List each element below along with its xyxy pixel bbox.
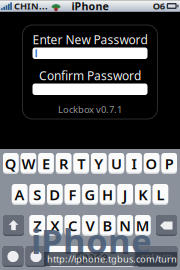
staticText: Confirm Password: [39, 67, 141, 83]
button[interactable]: return: [136, 246, 177, 267]
staticText: K: [138, 185, 147, 204]
staticText: O: [146, 154, 158, 173]
staticText: Lockbox v0.7.1: [58, 103, 122, 116]
button[interactable]: U: [109, 153, 124, 174]
staticText: Enter New Password: [32, 31, 147, 47]
button[interactable]: [32, 47, 147, 59]
staticText: I: [131, 154, 136, 173]
staticText: iPhone: [31, 217, 152, 263]
button[interactable]: K: [135, 184, 151, 205]
staticText: Q: [5, 154, 17, 173]
staticText: E: [42, 154, 50, 173]
staticText: T: [77, 154, 85, 173]
button[interactable]: V: [82, 215, 98, 236]
staticText: http://iphone.tgbus.com/turn: [47, 253, 177, 265]
staticText: W: [21, 154, 35, 173]
staticText: C: [68, 216, 77, 235]
button[interactable]: Y: [91, 153, 107, 174]
button[interactable]: T: [73, 153, 89, 174]
staticText: iPhone: [71, 0, 108, 13]
staticText: return: [141, 249, 173, 264]
staticText: B: [103, 216, 113, 235]
staticText: R: [59, 154, 68, 173]
button[interactable]: Next keyboard: [25, 246, 46, 267]
button[interactable]: H: [100, 184, 115, 205]
staticText: L: [156, 185, 164, 204]
button[interactable]: E: [38, 153, 54, 174]
button[interactable]: space: [48, 246, 134, 267]
staticText: M: [136, 216, 150, 235]
staticText: CHIN...: [14, 0, 48, 12]
staticText: P: [165, 154, 174, 173]
button[interactable]: Delete: [156, 215, 177, 236]
button[interactable]: [32, 83, 147, 95]
button[interactable]: S: [29, 184, 45, 205]
staticText: G: [84, 185, 95, 204]
button[interactable]: W: [21, 153, 36, 174]
staticText: H: [102, 185, 113, 204]
staticText: U: [111, 154, 122, 173]
button[interactable]: G: [82, 184, 98, 205]
staticText: V: [85, 216, 94, 235]
staticText: F: [68, 185, 76, 204]
button[interactable]: J: [117, 184, 133, 205]
button[interactable]: A: [12, 184, 27, 205]
button[interactable]: Shift: [3, 215, 24, 236]
button[interactable]: Numbers and symbols: [2, 246, 23, 267]
button[interactable]: F: [65, 184, 80, 205]
staticText: space: [75, 248, 108, 264]
staticText: X: [50, 216, 59, 235]
button[interactable]: L: [153, 184, 168, 205]
staticText: Y: [94, 154, 103, 173]
button[interactable]: Q: [3, 153, 19, 174]
button[interactable]: C: [65, 215, 80, 236]
button[interactable]: N: [117, 215, 133, 236]
button[interactable]: D: [47, 184, 63, 205]
button[interactable]: R: [56, 153, 71, 174]
staticText: J: [123, 185, 128, 204]
button[interactable]: I: [126, 153, 142, 174]
button[interactable]: X: [47, 215, 63, 236]
button[interactable]: B: [100, 215, 115, 236]
staticText: O6: [153, 0, 165, 12]
button[interactable]: M: [135, 215, 151, 236]
staticText: A: [15, 185, 25, 204]
staticText: S: [33, 185, 41, 204]
button[interactable]: O: [144, 153, 159, 174]
button[interactable]: Z: [29, 215, 45, 236]
button[interactable]: P: [161, 153, 177, 174]
staticText: Z: [33, 216, 41, 235]
staticText: N: [119, 216, 131, 235]
staticText: D: [49, 185, 60, 204]
